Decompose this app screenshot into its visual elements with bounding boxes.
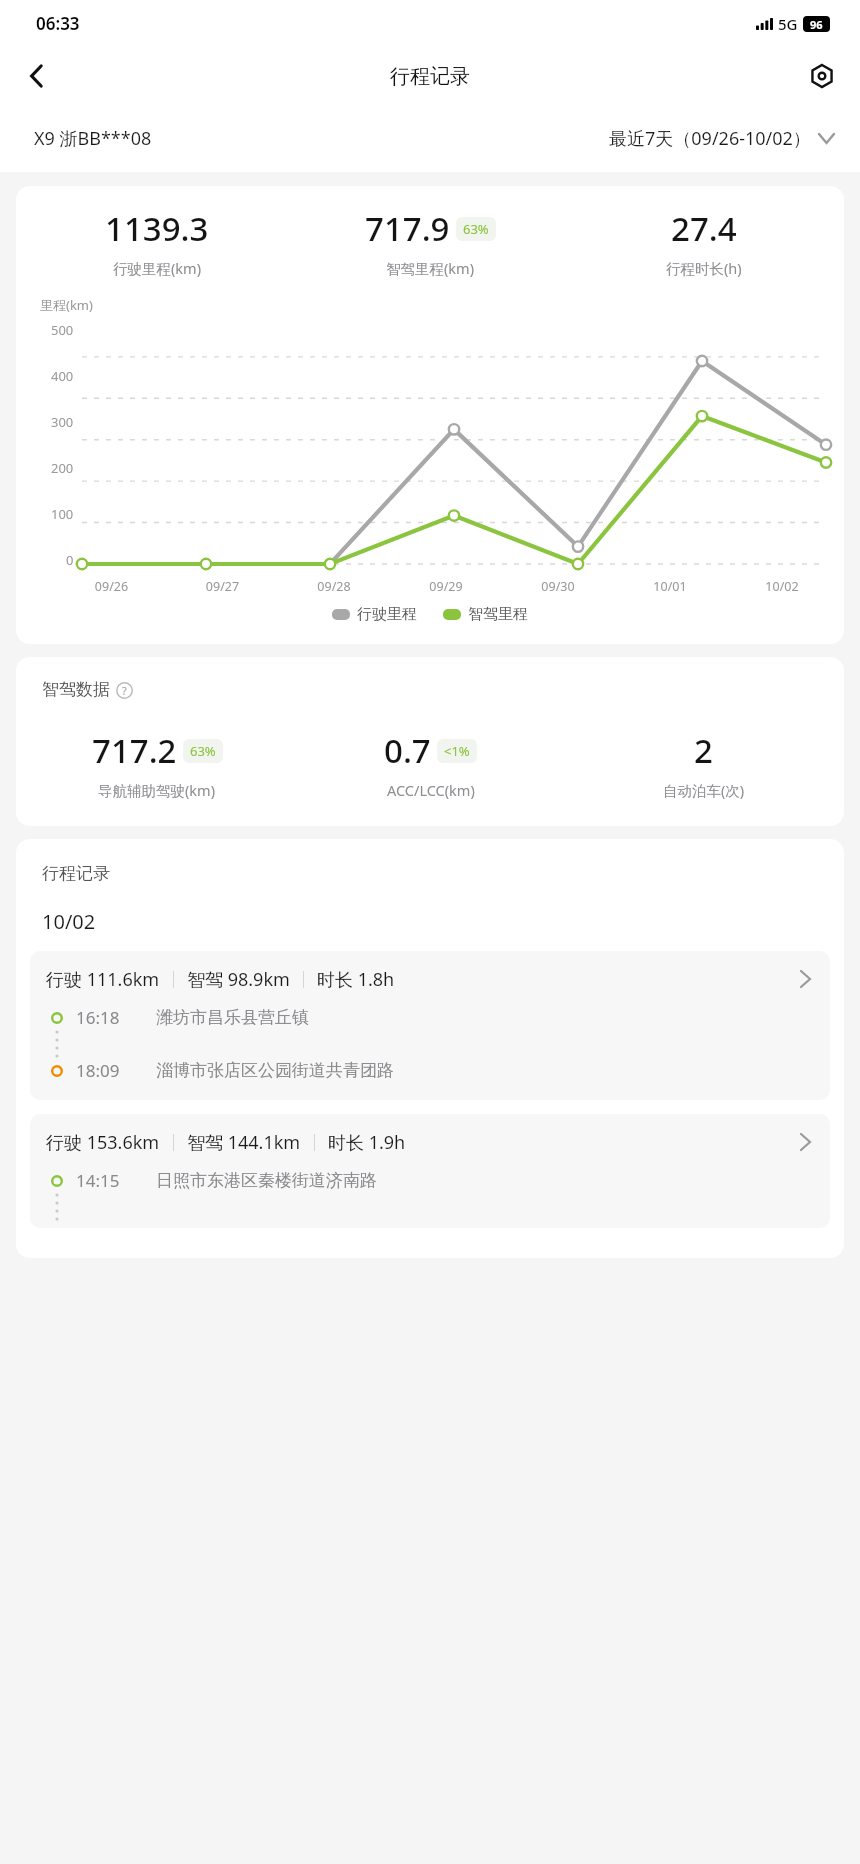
staticText: 63%	[190, 742, 216, 760]
staticText: 500	[51, 321, 74, 339]
staticText: 智驾 144.1km	[187, 1130, 301, 1155]
staticText: 导航辅助驾驶(km)	[98, 780, 216, 800]
staticText: 最近7天（09/26-10/02）	[609, 126, 811, 151]
staticText: 18:09	[76, 1059, 138, 1082]
staticText: 行程记录	[390, 64, 470, 89]
staticText: 27.4	[671, 206, 737, 251]
staticText: 淄博市张店区公园街道共青团路	[156, 1060, 394, 1081]
button[interactable]: Back	[14, 54, 58, 98]
staticText: 10/01	[614, 578, 726, 595]
staticText: 09/26	[56, 578, 167, 595]
staticText: 智驾 98.9km	[187, 967, 290, 992]
staticText: 行驶里程	[357, 605, 417, 624]
staticText: 300	[51, 413, 74, 431]
staticText: 智驾里程	[468, 605, 528, 624]
button[interactable]: 行驶 111.6km	[30, 951, 830, 1100]
staticText: 行程时长(h)	[666, 258, 742, 278]
staticText: 96	[810, 17, 823, 32]
staticText: 717.2	[92, 728, 177, 773]
staticText: 2	[694, 728, 713, 773]
button[interactable]: Help	[115, 681, 133, 699]
staticText: 智驾里程(km)	[386, 258, 475, 278]
staticText: 0.7	[384, 728, 431, 773]
staticText: 智驾数据	[42, 679, 110, 700]
staticText: 5G	[778, 14, 798, 34]
staticText: 06:33	[36, 12, 80, 35]
staticText: 100	[51, 505, 74, 523]
staticText: 行驶里程(km)	[113, 258, 202, 278]
staticText: 自动泊车(次)	[663, 780, 745, 800]
staticText: 717.9	[365, 206, 450, 251]
staticText: 09/28	[278, 578, 390, 595]
staticText: 09/27	[167, 578, 278, 595]
staticText: 日照市东港区秦楼街道济南路	[156, 1170, 377, 1191]
staticText: X9 浙BB***08	[34, 126, 152, 151]
button[interactable]: Settings	[800, 54, 844, 98]
staticText: 09/30	[502, 578, 614, 595]
staticText: 16:18	[76, 1006, 138, 1029]
staticText: 里程(km)	[40, 296, 93, 314]
button[interactable]: 最近7天（09/26-10/02）	[609, 126, 834, 151]
staticText: 时长 1.9h	[328, 1130, 406, 1155]
staticText: 行驶 111.6km	[46, 967, 160, 992]
button[interactable]: 行驶 153.6km	[30, 1114, 830, 1228]
staticText: 时长 1.8h	[317, 967, 395, 992]
staticText: 行程记录	[42, 863, 110, 884]
staticText: 10/02	[42, 908, 96, 935]
staticText: 63%	[463, 220, 489, 238]
staticText: 10/02	[726, 578, 838, 595]
staticText: 09/29	[390, 578, 502, 595]
staticText: ACC/LCC(km)	[387, 780, 475, 800]
staticText: ?	[122, 683, 127, 698]
staticText: 14:15	[76, 1169, 138, 1192]
staticText: 1139.3	[105, 206, 209, 251]
staticText: 200	[51, 459, 74, 477]
staticText: 行驶 153.6km	[46, 1130, 160, 1155]
staticText: 0	[66, 551, 74, 569]
staticText: 潍坊市昌乐县营丘镇	[156, 1007, 309, 1028]
staticText: <1%	[444, 742, 470, 760]
staticText: 400	[51, 367, 74, 385]
